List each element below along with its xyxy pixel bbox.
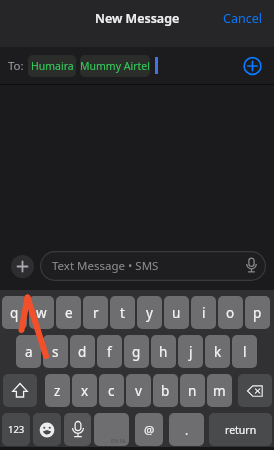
staticText: k: [214, 343, 222, 361]
staticText: l: [243, 343, 247, 361]
staticText: u: [172, 304, 181, 322]
staticText: e: [65, 304, 73, 322]
staticText: Mummy Airtel: [80, 59, 150, 73]
staticText: r: [93, 304, 99, 322]
staticText: z: [54, 382, 61, 400]
staticText: m: [213, 382, 226, 400]
staticText: New Message: [95, 10, 180, 27]
staticText: f: [107, 343, 112, 361]
staticText: j: [189, 343, 193, 361]
staticText: n: [188, 382, 197, 400]
staticText: h: [159, 343, 168, 361]
staticText: g: [132, 343, 141, 361]
staticText: b: [161, 382, 170, 400]
staticText: To:: [8, 58, 24, 74]
staticText: d: [78, 343, 87, 361]
staticText: s: [52, 343, 59, 361]
staticText: return: [225, 423, 257, 437]
staticText: q: [10, 304, 19, 322]
staticText: v: [135, 382, 142, 400]
staticText: c: [108, 382, 115, 400]
staticText: t: [120, 304, 125, 322]
staticText: .: [185, 422, 189, 438]
staticText: EN NL: [111, 437, 127, 444]
staticText: w: [36, 304, 47, 322]
staticText: y: [146, 304, 153, 322]
staticText: a: [25, 343, 33, 361]
staticText: @: [144, 422, 155, 438]
staticText: Humaira: [31, 59, 74, 73]
staticText: Cancel: [223, 10, 262, 27]
staticText: p: [253, 304, 262, 322]
staticText: 123: [8, 423, 25, 436]
staticText: i: [202, 304, 206, 322]
staticText: x: [81, 382, 89, 400]
staticText: o: [226, 304, 235, 322]
staticText: Text Message • SMS: [52, 258, 159, 274]
